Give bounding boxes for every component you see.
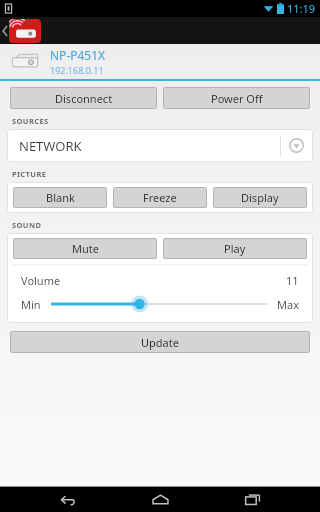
staticText: Display — [241, 190, 279, 205]
button[interactable]: Update — [10, 331, 310, 353]
button[interactable]: Mute — [13, 238, 157, 259]
button[interactable]: Freeze — [113, 187, 207, 208]
staticText: 11:19 — [287, 1, 316, 16]
staticText: Freeze — [143, 190, 177, 205]
button[interactable]: Volume slider — [51, 296, 267, 312]
staticText: Update — [141, 335, 179, 350]
staticText: Min — [21, 297, 41, 312]
button[interactable]: Disconnect — [10, 87, 157, 109]
staticText: Blank — [46, 190, 75, 205]
staticText: NETWORK — [19, 137, 82, 155]
button[interactable]: Play — [163, 238, 307, 259]
button[interactable]: NP-P451X — [0, 44, 320, 79]
staticText: SOURCES — [12, 116, 49, 126]
button[interactable]: Blank — [13, 187, 107, 208]
button[interactable]: Power Off — [163, 87, 310, 109]
button[interactable]: Display — [213, 187, 307, 208]
button[interactable]: NETWORK — [7, 129, 313, 162]
staticText: Play — [224, 241, 246, 256]
staticText: SOUND — [12, 220, 42, 230]
staticText: 11 — [286, 273, 299, 288]
button[interactable]: Back — [41, 486, 93, 512]
staticText: Mute — [72, 241, 99, 256]
staticText: Disconnect — [55, 91, 113, 106]
staticText: PICTURE — [12, 169, 47, 179]
staticText: NP-P451X — [50, 47, 106, 63]
button[interactable]: Navigate up — [0, 17, 41, 44]
button[interactable]: Recent apps — [227, 486, 279, 512]
staticText: Max — [277, 297, 299, 312]
staticText: Volume — [21, 273, 61, 288]
staticText: 192.168.0.11 — [50, 64, 104, 76]
button[interactable]: Home — [134, 486, 186, 512]
other: Select source — [289, 138, 304, 153]
staticText: Power Off — [211, 91, 263, 106]
